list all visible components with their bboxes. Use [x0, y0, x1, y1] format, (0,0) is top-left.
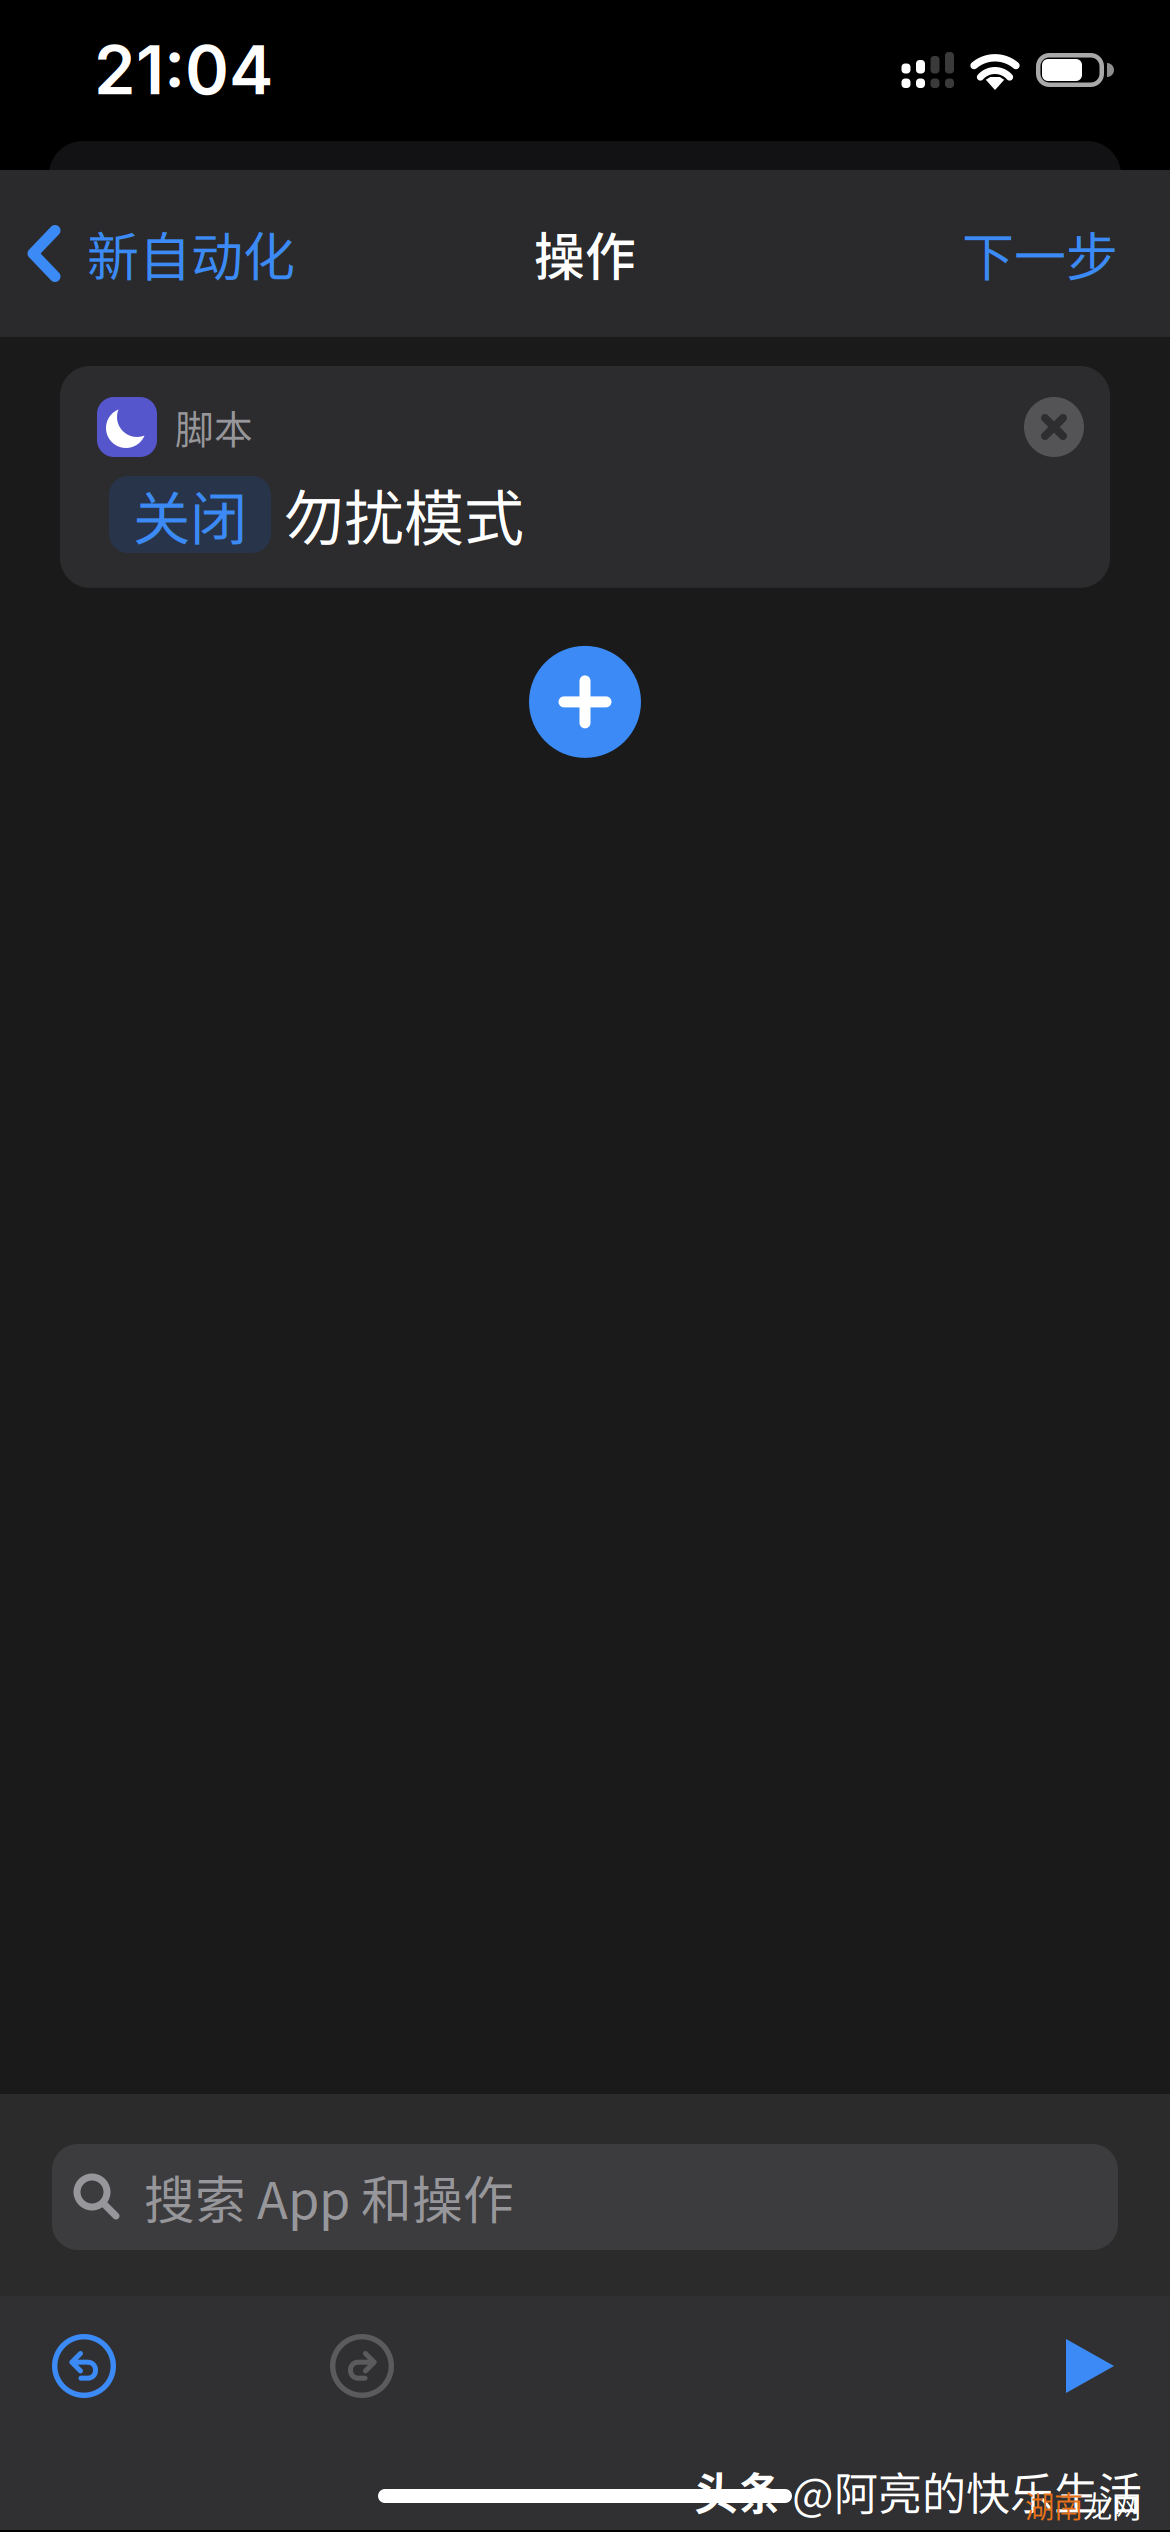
staticText: @阿亮的快乐生活 [792, 2459, 1142, 2523]
button[interactable]: 下一步 [962, 190, 1170, 317]
staticText: 新自动化 [87, 216, 295, 291]
staticText: 龙网 [1083, 2483, 1141, 2526]
button[interactable]: Redo [318, 2322, 406, 2410]
staticText: 勿扰模式 [284, 471, 524, 558]
button[interactable]: Remove action [1024, 397, 1084, 457]
button[interactable]: Undo [40, 2322, 128, 2410]
staticText: 关闭 [133, 473, 247, 556]
staticText: 操作 [534, 217, 636, 290]
button[interactable]: Run [1050, 2324, 1128, 2408]
staticText: 下一步 [962, 216, 1118, 291]
staticText: 脚本 [175, 399, 253, 455]
button[interactable]: 新自动化 [0, 190, 295, 317]
staticText: 湖南 [1025, 2483, 1083, 2526]
staticText: 搜索 App 和操作 [144, 2160, 514, 2234]
button[interactable]: Add action [529, 646, 641, 758]
staticText: 21:04 [94, 30, 273, 110]
staticText: 头条 [694, 2459, 782, 2523]
